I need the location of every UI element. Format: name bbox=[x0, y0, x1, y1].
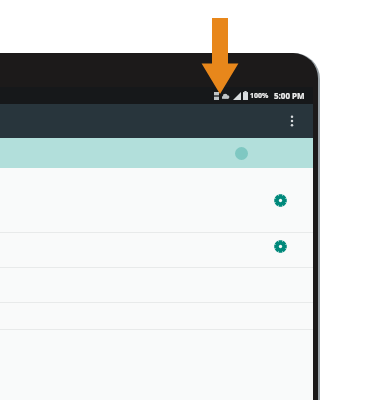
button[interactable]: Settings bbox=[0, 233, 313, 267]
button[interactable]: More options bbox=[280, 109, 304, 133]
button[interactable]: Settings bbox=[271, 237, 289, 255]
staticText: 100% bbox=[250, 91, 269, 101]
button[interactable] bbox=[0, 138, 313, 168]
staticText: 5:00 PM bbox=[274, 90, 305, 101]
button[interactable]: Settings bbox=[271, 191, 289, 209]
button[interactable]: Settings bbox=[0, 168, 313, 232]
